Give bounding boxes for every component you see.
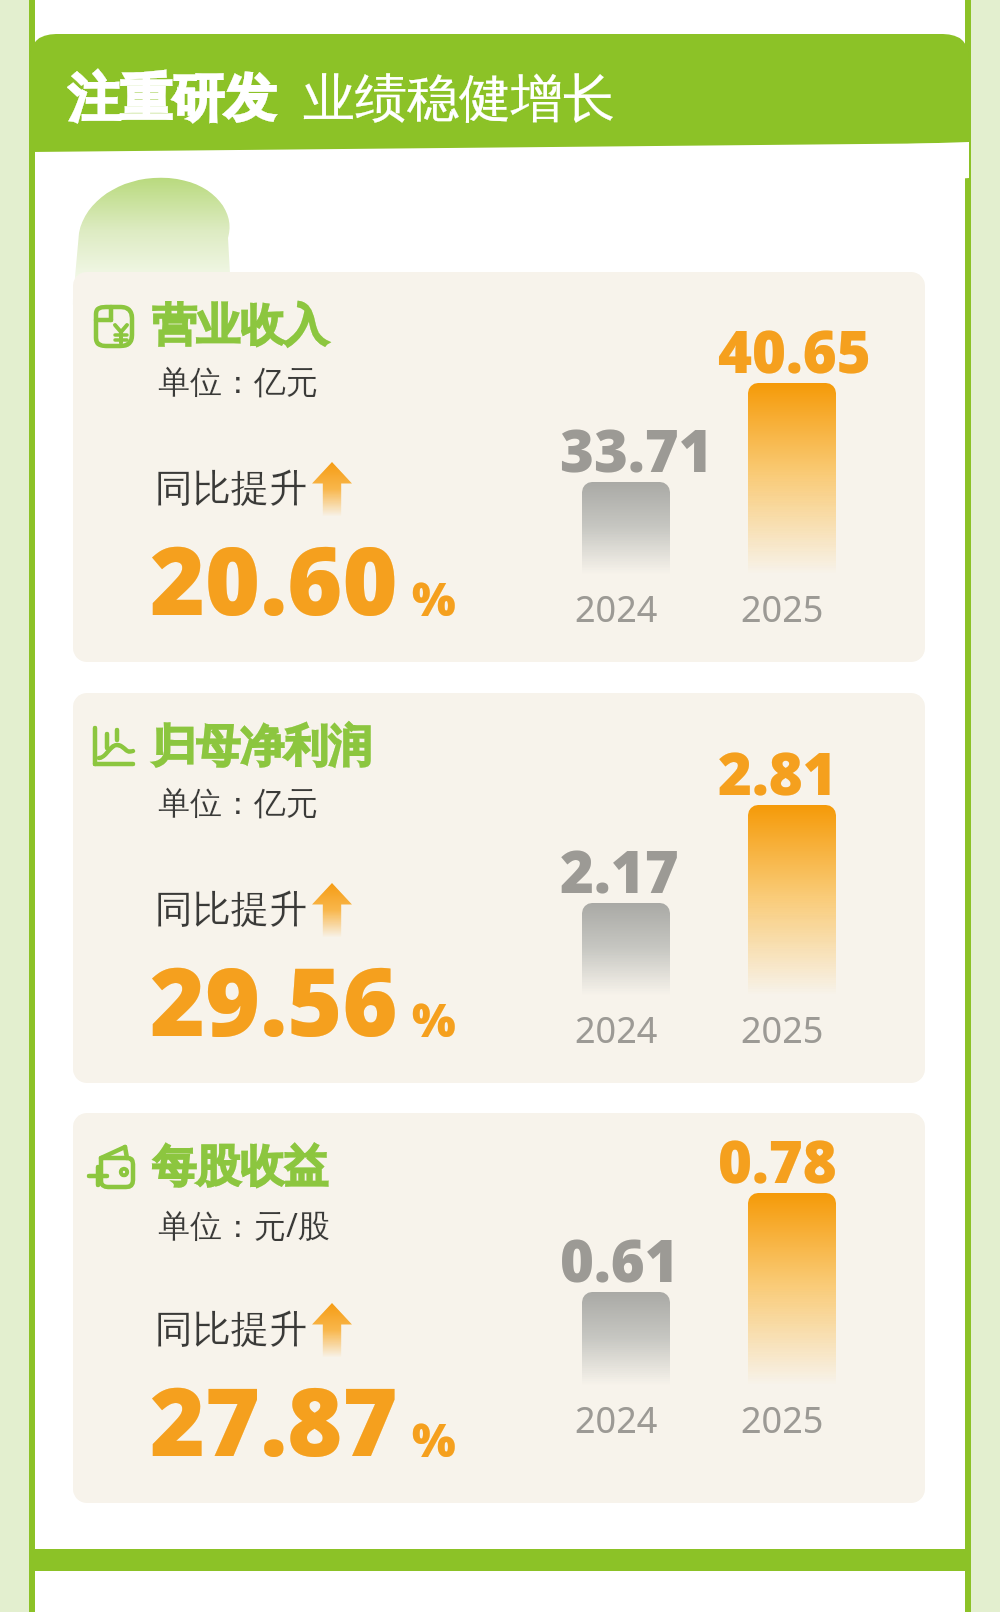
staticText: 2.17 [560, 831, 679, 910]
staticText: 0.78 [718, 1121, 837, 1200]
button[interactable] [73, 693, 925, 1083]
staticText: 2024 [575, 1005, 658, 1054]
staticText: 2025 [741, 1395, 824, 1444]
staticText: 2025 [741, 584, 824, 633]
staticText: 归母净利润 [152, 719, 372, 774]
staticText: 每股收益 [152, 1139, 328, 1194]
staticText: 同比提升 [155, 1305, 307, 1353]
staticText: % [412, 567, 456, 630]
staticText: 同比提升 [155, 885, 307, 933]
staticText: 2.81 [718, 733, 837, 812]
staticText: 单位：元/股 [158, 1203, 330, 1247]
other: 营业收入 [86, 298, 138, 350]
staticText: 2025 [741, 1005, 824, 1054]
staticText: 注重研发 业绩稳健增长 [68, 60, 616, 131]
other: 归母净利润 [86, 719, 138, 771]
staticText: 2024 [575, 1395, 658, 1444]
staticText: 营业收入 [152, 298, 328, 353]
staticText: 0.61 [560, 1220, 679, 1299]
staticText: 20.60 [150, 515, 398, 643]
staticText: 2024 [575, 584, 658, 633]
staticText: 27.87 [150, 1356, 398, 1484]
other: 每股收益 [86, 1139, 138, 1191]
staticText: 29.56 [150, 936, 398, 1064]
staticText: 40.65 [718, 311, 871, 390]
button[interactable] [73, 1113, 925, 1503]
staticText: 同比提升 [155, 464, 307, 512]
button[interactable]: 注重研发 业绩稳健增长 [68, 60, 616, 131]
button[interactable] [73, 272, 925, 662]
staticText: 33.71 [560, 410, 713, 489]
staticText: % [412, 1408, 456, 1471]
staticText: 单位：亿元 [158, 783, 318, 823]
staticText: 单位：亿元 [158, 362, 318, 402]
staticText: % [412, 988, 456, 1051]
